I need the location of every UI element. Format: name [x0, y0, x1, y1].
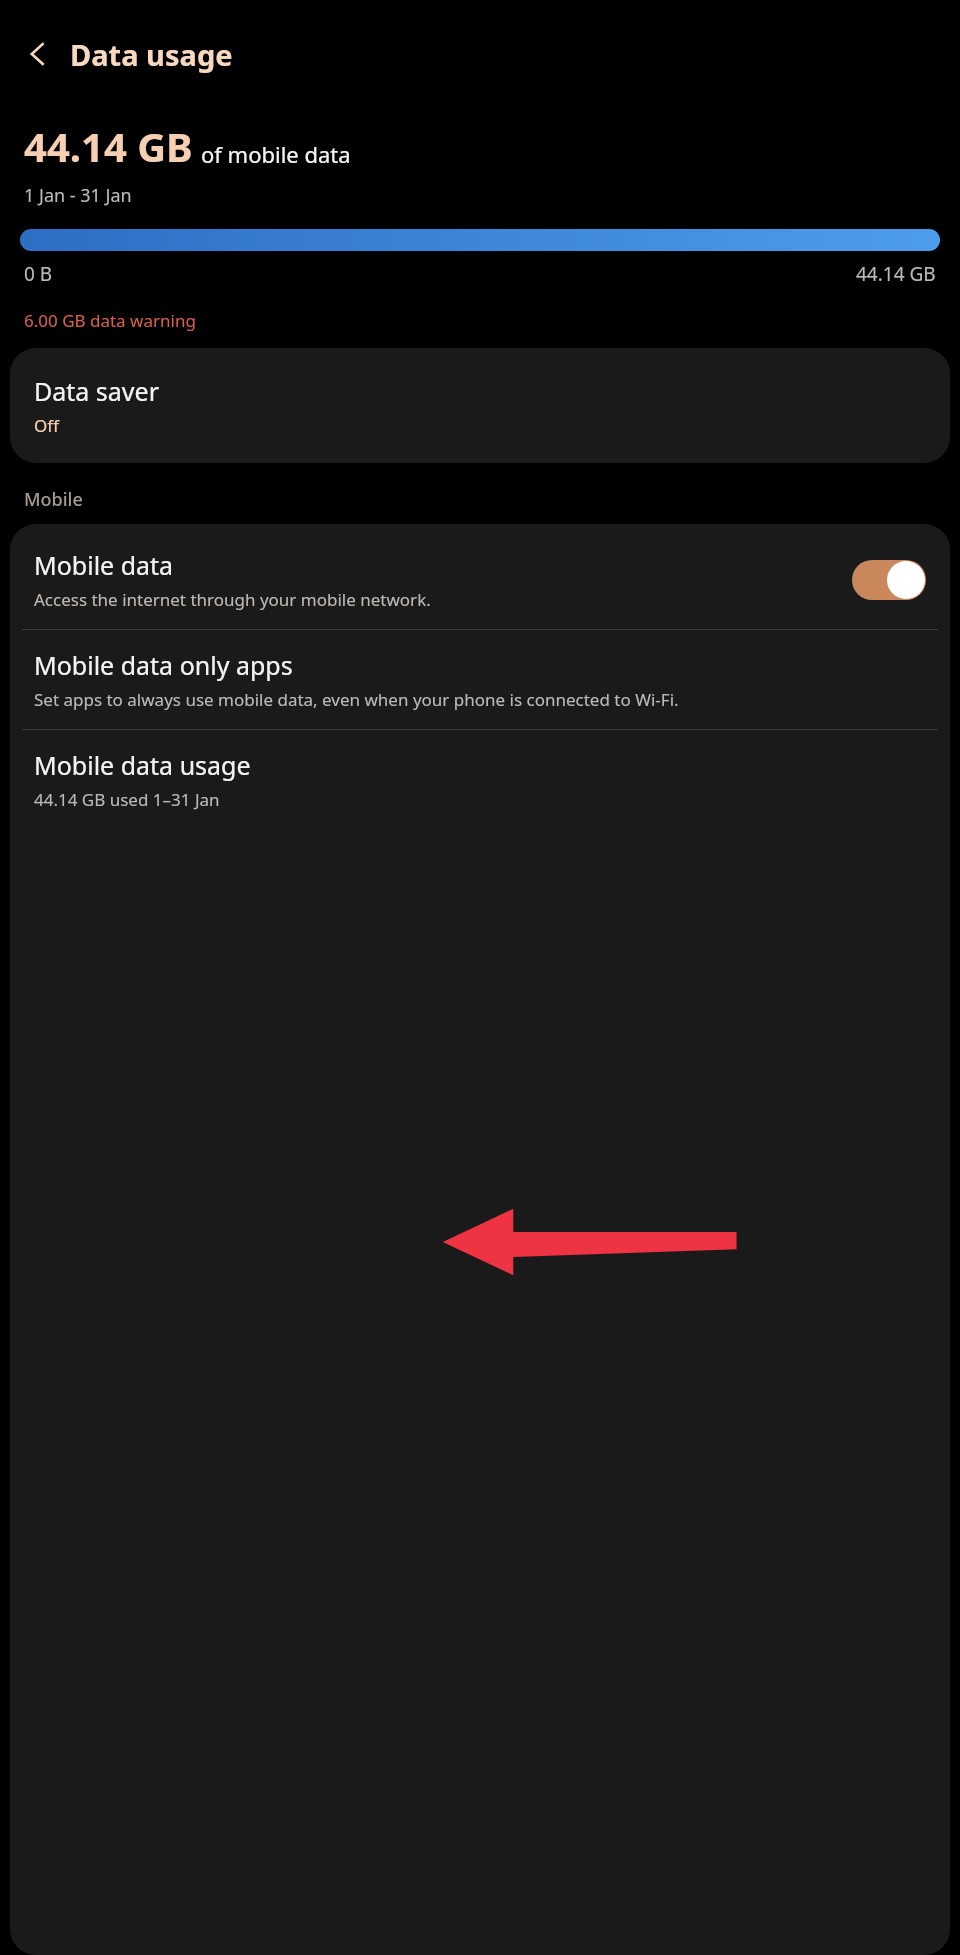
staticText: Mobile	[24, 487, 83, 512]
staticText: Data usage	[70, 35, 233, 74]
staticText: 44.14 GB used 1–31 Jan	[34, 788, 220, 811]
staticText: Set apps to always use mobile data, even…	[34, 688, 679, 711]
staticText: Off	[34, 414, 59, 437]
button[interactable]: Mobile data	[10, 530, 950, 629]
staticText: 44.14 GB	[856, 261, 936, 287]
staticText: Mobile data	[34, 548, 174, 582]
button[interactable]: Back	[14, 30, 62, 78]
staticText: Data saver	[34, 374, 159, 408]
button[interactable]: Mobile data only apps	[10, 630, 950, 729]
button[interactable]: Mobile data toggle	[852, 560, 926, 600]
staticText: Access the internet through your mobile …	[34, 588, 431, 611]
button[interactable]: Data saver	[10, 356, 950, 455]
staticText: Mobile data usage	[34, 748, 251, 782]
staticText: Mobile data only apps	[34, 648, 293, 682]
staticText: 0 B	[24, 261, 53, 287]
staticText: 6.00 GB data warning	[24, 309, 196, 332]
staticText: of mobile data	[201, 139, 351, 169]
button[interactable]: Mobile data usage	[10, 730, 950, 829]
staticText: 44.14 GB	[24, 119, 193, 173]
staticText: 1 Jan - 31 Jan	[24, 183, 132, 208]
